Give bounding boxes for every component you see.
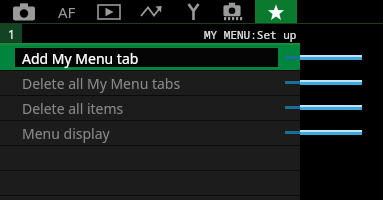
staticText: Menu display (22, 124, 110, 143)
staticText: 1 (8, 26, 15, 42)
button[interactable]: Playback (93, 0, 125, 24)
button[interactable]: Autofocus (50, 0, 84, 24)
button[interactable]: Wireless (135, 0, 169, 24)
button[interactable]: Menu display (0, 120, 383, 145)
button[interactable]: Add My Menu tab (0, 45, 383, 70)
staticText: Delete all items (22, 99, 124, 118)
button[interactable]: My Menu tab (255, 0, 297, 24)
button[interactable]: Custom functions (215, 0, 249, 24)
button[interactable]: Set up (178, 0, 208, 24)
button[interactable]: 1 (0, 24, 22, 44)
button[interactable]: Delete all My Menu tabs (0, 70, 383, 95)
staticText: Delete all My Menu tabs (22, 74, 181, 93)
staticText: Add My Menu tab (22, 49, 139, 68)
button[interactable]: Delete all items (0, 95, 383, 120)
button[interactable]: Shooting (8, 0, 40, 24)
staticText: MY MENU:Set up (204, 27, 297, 42)
staticText: AF (58, 2, 76, 22)
